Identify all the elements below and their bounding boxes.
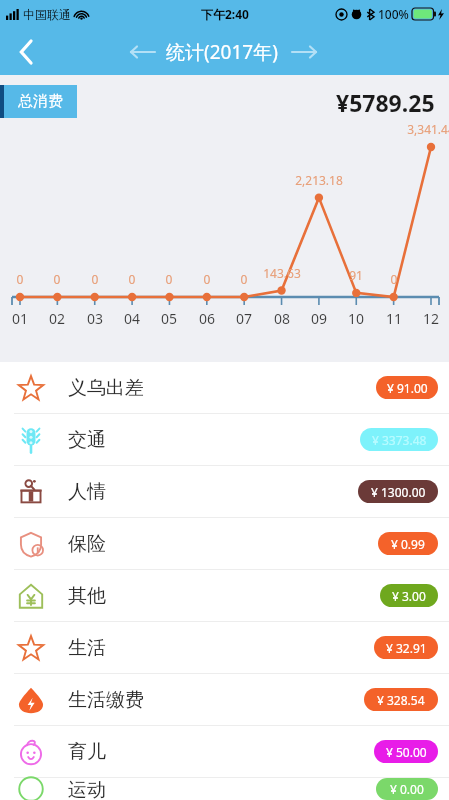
- staticText: 生活: [68, 636, 106, 660]
- staticText: ¥ 1300.00: [371, 484, 426, 500]
- staticText: ¥ 50.00: [386, 744, 427, 760]
- staticText: 0: [25, 271, 89, 287]
- staticText: 生活缴费: [68, 688, 144, 712]
- button[interactable]: 交通: [0, 414, 449, 465]
- staticText: 统计(2017年): [166, 39, 278, 65]
- staticText: ¥ 0.99: [391, 536, 425, 552]
- staticText: 0: [362, 271, 426, 287]
- staticText: 0: [0, 271, 52, 287]
- staticText: 09: [299, 309, 339, 328]
- staticText: ¥5789.25: [336, 87, 435, 118]
- staticText: ¥ 3.00: [392, 588, 426, 604]
- button[interactable]: 义乌出差: [0, 362, 449, 413]
- staticText: 0: [137, 271, 201, 287]
- button[interactable]: 保险: [0, 518, 449, 569]
- button[interactable]: Back: [0, 28, 52, 75]
- staticText: 中国联通: [23, 7, 71, 22]
- button[interactable]: 人情: [0, 466, 449, 517]
- button[interactable]: Previous year: [120, 32, 166, 72]
- button[interactable]: 其他: [0, 570, 449, 621]
- staticText: 下午2:40: [201, 6, 249, 22]
- staticText: 保险: [68, 532, 106, 556]
- staticText: 运动: [68, 778, 106, 800]
- staticText: 11: [374, 309, 414, 328]
- staticText: ¥ 3373.48: [372, 432, 427, 448]
- staticText: 12: [411, 309, 449, 328]
- staticText: 03: [75, 309, 115, 328]
- button[interactable]: 生活缴费: [0, 674, 449, 725]
- staticText: 其他: [68, 584, 106, 608]
- staticText: 91: [324, 267, 388, 283]
- staticText: 06: [187, 309, 227, 328]
- staticText: ¥ 91.00: [387, 380, 428, 396]
- button[interactable]: 总消费: [18, 85, 63, 118]
- staticText: 05: [149, 309, 189, 328]
- staticText: 10: [336, 309, 376, 328]
- staticText: 07: [224, 309, 264, 328]
- staticText: 总消费: [18, 92, 63, 111]
- staticText: 义乌出差: [68, 376, 144, 400]
- staticText: 交通: [68, 428, 106, 452]
- staticText: 0: [175, 271, 239, 287]
- staticText: 2,213.18: [287, 172, 351, 188]
- staticText: 04: [112, 309, 152, 328]
- button[interactable]: Next year: [278, 32, 330, 72]
- staticText: 0: [63, 271, 127, 287]
- staticText: ¥ 32.91: [386, 640, 427, 656]
- staticText: 人情: [68, 480, 106, 504]
- button[interactable]: 运动: [0, 778, 449, 800]
- staticText: 01: [0, 309, 40, 328]
- staticText: 育儿: [68, 740, 106, 764]
- staticText: ¥ 328.54: [377, 692, 425, 708]
- staticText: 143.63: [250, 265, 314, 281]
- staticText: 100%: [378, 6, 409, 22]
- staticText: 0: [212, 271, 276, 287]
- staticText: 08: [262, 309, 302, 328]
- staticText: 3,341.44: [399, 121, 449, 137]
- staticText: ¥ 0.00: [390, 781, 424, 797]
- button[interactable]: 育儿: [0, 726, 449, 777]
- staticText: 0: [100, 271, 164, 287]
- button[interactable]: 生活: [0, 622, 449, 673]
- staticText: 02: [37, 309, 77, 328]
